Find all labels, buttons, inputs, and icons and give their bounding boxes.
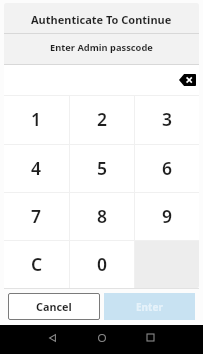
button[interactable]: Cancel: [8, 293, 100, 320]
button[interactable]: Back: [37, 323, 68, 352]
staticText: 2: [97, 107, 108, 131]
button[interactable]: Enter: [104, 293, 195, 320]
staticText: 1: [31, 107, 42, 131]
button[interactable]: Recents: [135, 323, 166, 352]
button[interactable]: 3: [135, 96, 199, 144]
staticText: 0: [97, 252, 108, 276]
staticText: 5: [97, 156, 108, 180]
button[interactable]: 4: [4, 145, 69, 192]
button[interactable]: 7: [4, 193, 69, 240]
staticText: 4: [31, 156, 42, 180]
button[interactable]: 5: [70, 145, 134, 192]
button[interactable]: 6: [135, 145, 199, 192]
staticText: Enter: [136, 300, 163, 314]
staticText: 8: [97, 204, 108, 228]
button[interactable]: 2: [70, 96, 134, 144]
staticText: 3: [162, 107, 173, 131]
staticText: Enter Admin passcode: [50, 41, 153, 54]
button[interactable]: 1: [4, 96, 69, 144]
button[interactable]: C: [4, 241, 69, 288]
staticText: Authenticate To Continue: [31, 12, 172, 27]
staticText: 6: [162, 156, 173, 180]
button[interactable]: 8: [70, 193, 134, 240]
staticText: 9: [162, 204, 173, 228]
button[interactable]: 9: [135, 193, 199, 240]
button[interactable]: Home: [86, 323, 117, 352]
staticText: Cancel: [36, 299, 72, 314]
button[interactable]: Backspace: [177, 72, 197, 88]
staticText: 7: [31, 204, 42, 228]
button[interactable]: 0: [70, 241, 134, 288]
staticText: C: [31, 252, 43, 276]
